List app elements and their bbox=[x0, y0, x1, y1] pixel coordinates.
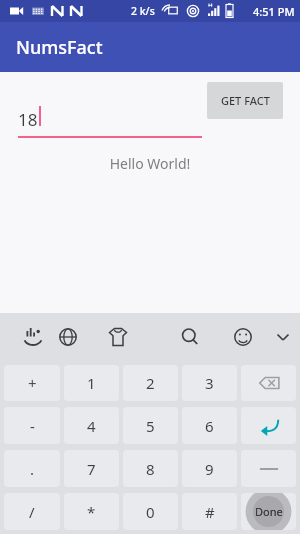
button[interactable]: Backspace bbox=[241, 365, 296, 401]
staticText: 1 bbox=[87, 373, 96, 393]
button[interactable]: 5 bbox=[123, 407, 178, 444]
staticText: 18 bbox=[18, 108, 38, 131]
button[interactable]: Space bbox=[241, 450, 296, 487]
button[interactable]: GET FACT bbox=[207, 82, 283, 119]
staticText: * bbox=[87, 502, 96, 522]
staticText: . bbox=[30, 459, 35, 479]
button[interactable]: + bbox=[4, 365, 60, 401]
staticText: 8 bbox=[146, 459, 155, 479]
staticText: / bbox=[29, 502, 35, 522]
staticText: Done bbox=[255, 504, 283, 519]
staticText: NumsFact bbox=[16, 35, 103, 60]
button[interactable]: # bbox=[182, 493, 237, 530]
staticText: 4 bbox=[87, 416, 96, 436]
staticText: GET FACT bbox=[221, 93, 270, 108]
button[interactable]: - bbox=[4, 407, 60, 444]
staticText: # bbox=[205, 502, 215, 522]
button[interactable]: Hide keyboard bbox=[266, 313, 300, 361]
button[interactable]: Emoji bbox=[226, 313, 260, 361]
button[interactable]: Change language bbox=[51, 313, 85, 361]
staticText: 4:51 PM bbox=[253, 4, 295, 19]
staticText: 9 bbox=[205, 459, 214, 479]
button[interactable]: Search bbox=[173, 313, 207, 361]
button[interactable]: 18 bbox=[18, 100, 202, 138]
button[interactable]: Done bbox=[241, 493, 296, 530]
staticText: 3 bbox=[205, 373, 214, 393]
button[interactable]: Enter bbox=[241, 407, 296, 444]
staticText: Done bbox=[255, 504, 283, 519]
button[interactable]: / bbox=[4, 493, 60, 530]
staticText: 5 bbox=[146, 416, 155, 436]
button[interactable]: * bbox=[64, 493, 119, 530]
staticText: 7 bbox=[87, 459, 96, 479]
button[interactable]: 1 bbox=[64, 365, 119, 401]
button[interactable]: Gboard settings bbox=[16, 313, 50, 361]
button[interactable]: Themes bbox=[101, 313, 135, 361]
button[interactable]: 2 bbox=[123, 365, 178, 401]
staticText: 2 k/s bbox=[131, 4, 155, 18]
staticText: - bbox=[30, 416, 35, 436]
button[interactable]: 6 bbox=[182, 407, 237, 444]
staticText: 6 bbox=[205, 416, 214, 436]
button[interactable]: 0 bbox=[123, 493, 178, 530]
button[interactable]: . bbox=[4, 450, 60, 487]
button[interactable]: 7 bbox=[64, 450, 119, 487]
button[interactable]: 3 bbox=[182, 365, 237, 401]
staticText: + bbox=[28, 373, 37, 393]
staticText: 0 bbox=[146, 502, 155, 522]
button[interactable]: 4 bbox=[64, 407, 119, 444]
staticText: 2 bbox=[146, 373, 155, 393]
staticText: Hello World! bbox=[0, 154, 300, 173]
button[interactable]: 9 bbox=[182, 450, 237, 487]
button[interactable]: 8 bbox=[123, 450, 178, 487]
